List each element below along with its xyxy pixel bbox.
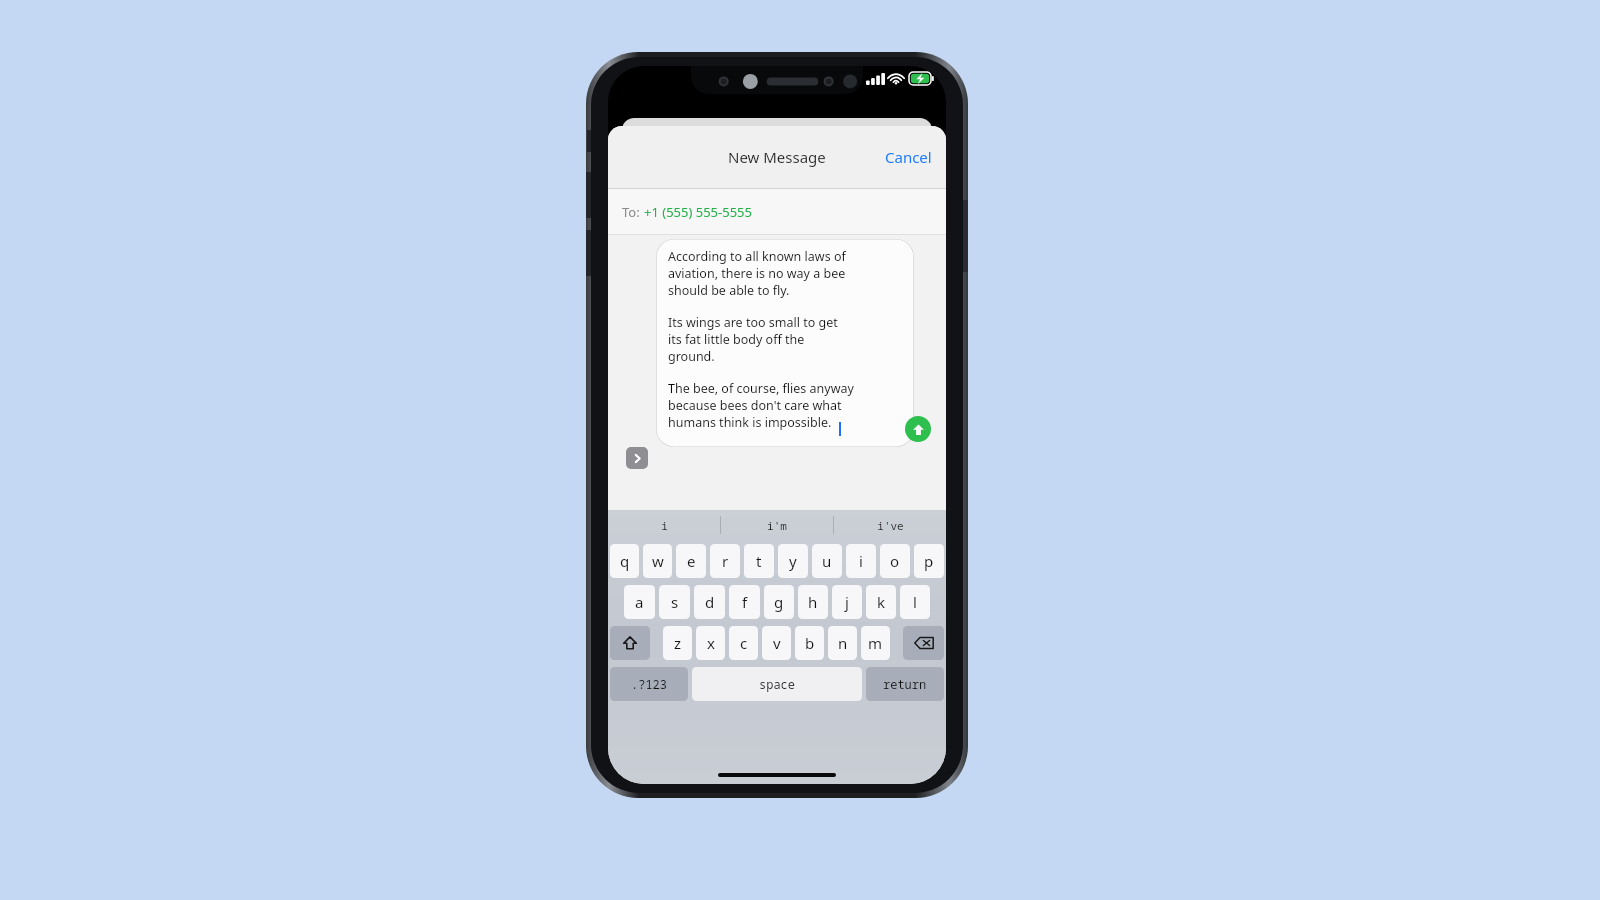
button[interactable]: n (828, 626, 857, 660)
button[interactable]: According to all known laws of aviation,… (656, 239, 914, 447)
button[interactable]: Send (905, 416, 931, 442)
button[interactable]: c (729, 626, 758, 660)
staticText: space (759, 676, 796, 692)
button[interactable]: v (762, 626, 791, 660)
staticText: q (620, 551, 630, 571)
staticText: Cancel (885, 147, 932, 167)
button[interactable]: f (729, 585, 760, 619)
button[interactable]: g (764, 585, 794, 619)
button[interactable]: space (692, 667, 862, 701)
button[interactable]: r (710, 544, 740, 578)
staticText: u (822, 551, 832, 571)
staticText: n (838, 633, 848, 653)
staticText: p (924, 551, 934, 571)
staticText: i've (877, 518, 904, 533)
button[interactable]: a (624, 585, 655, 619)
button[interactable]: Backspace (903, 626, 944, 660)
staticText: To: (622, 203, 644, 221)
staticText: .?123 (631, 676, 668, 692)
button[interactable]: e (676, 544, 706, 578)
button[interactable]: b (795, 626, 824, 660)
staticText: t (756, 551, 762, 571)
staticText: y (789, 551, 797, 571)
button[interactable]: k (866, 585, 896, 619)
button[interactable]: i've (834, 510, 946, 540)
button[interactable]: New Message (728, 147, 826, 167)
staticText: h (808, 592, 818, 612)
staticText: x (707, 633, 715, 653)
staticText: The bee, of course, flies anyway because… (668, 380, 854, 431)
button[interactable]: To: (608, 189, 946, 234)
staticText: z (674, 633, 682, 653)
button[interactable]: h (798, 585, 828, 619)
button[interactable]: return (866, 667, 944, 701)
staticText: v (773, 633, 781, 653)
button[interactable]: s (659, 585, 690, 619)
staticText: m (868, 633, 883, 653)
staticText: d (705, 592, 715, 612)
button[interactable]: x (696, 626, 725, 660)
button[interactable]: j (832, 585, 862, 619)
staticText: According to all known laws of aviation,… (668, 248, 846, 299)
button[interactable]: Expand (626, 447, 648, 469)
staticText: o (890, 551, 900, 571)
button[interactable]: Cancel (871, 139, 946, 175)
staticText: j (845, 592, 849, 612)
staticText: return (883, 676, 927, 692)
button[interactable]: y (778, 544, 808, 578)
button[interactable]: i (846, 544, 876, 578)
button[interactable]: u (812, 544, 842, 578)
button[interactable]: o (880, 544, 910, 578)
staticText: s (671, 592, 679, 612)
button[interactable]: p (914, 544, 944, 578)
staticText: i'm (767, 518, 787, 533)
button[interactable]: m (861, 626, 890, 660)
button[interactable]: z (663, 626, 692, 660)
button[interactable]: l (900, 585, 930, 619)
button[interactable]: Shift (610, 626, 650, 660)
staticText: i (661, 518, 668, 533)
staticText: k (877, 592, 886, 612)
staticText: i (859, 551, 863, 571)
button[interactable]: q (610, 544, 639, 578)
staticText: g (774, 592, 784, 612)
button[interactable]: .?123 (610, 667, 688, 701)
button[interactable]: i'm (721, 510, 833, 540)
button[interactable]: d (694, 585, 725, 619)
staticText: b (805, 633, 815, 653)
staticText: Its wings are too small to get its fat l… (668, 314, 838, 365)
button[interactable]: i (608, 510, 720, 540)
staticText: e (687, 551, 696, 571)
staticText: r (722, 551, 729, 571)
staticText: +1 (555) 555-5555 (644, 203, 752, 221)
staticText: c (740, 633, 748, 653)
button[interactable]: w (643, 544, 672, 578)
staticText: l (913, 592, 917, 612)
staticText: f (742, 592, 748, 612)
staticText: a (635, 592, 644, 612)
button[interactable]: t (744, 544, 774, 578)
staticText: w (652, 551, 664, 571)
